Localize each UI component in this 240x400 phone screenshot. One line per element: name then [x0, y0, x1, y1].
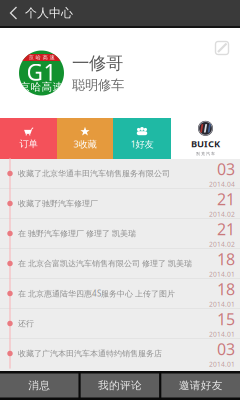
staticText: 个人中心	[25, 6, 73, 20]
button[interactable]: 消息	[0, 371, 79, 399]
staticText: 我的评论	[98, 379, 142, 392]
button[interactable]: 在 北京合富凯达汽车销售有限公司 修理了 凯美瑞	[0, 249, 240, 278]
staticText: 2014.01	[209, 270, 235, 279]
button[interactable]: 收藏了驰野汽车修理厂	[0, 189, 240, 218]
staticText: 2014.01	[209, 330, 235, 339]
button[interactable]: 3收藏	[57, 118, 113, 159]
staticText: 2014.01	[209, 300, 235, 309]
button[interactable]: 邀请好友	[161, 371, 240, 399]
button[interactable]: 1好友	[113, 118, 171, 159]
staticText: 21	[217, 218, 235, 240]
staticText: 收藏了驰野汽车修理厂	[18, 199, 98, 208]
staticText: 在 北京合富凯达汽车销售有限公司 修理了 凯美瑞	[18, 259, 192, 268]
button[interactable]: 在 驰野汽车修理厂 修理了 凯美瑞	[0, 219, 240, 248]
staticText: 3收藏	[73, 138, 96, 150]
button[interactable]: 我的评论	[81, 371, 159, 399]
button[interactable]: Back	[0, 3, 23, 22]
button[interactable]: 收藏了广汽本田汽车本通特约销售服务店	[0, 339, 240, 368]
staticText: 京哈高速	[19, 80, 63, 93]
staticText: 邀请好友	[179, 379, 223, 392]
staticText: 15	[217, 308, 235, 330]
button[interactable]: 订单	[0, 118, 57, 159]
button[interactable]: 收藏了北京华通丰田汽车销售服务有限公司	[0, 159, 240, 188]
staticText: 18	[217, 248, 235, 270]
staticText: 03	[217, 158, 235, 180]
staticText: 一修哥	[72, 53, 123, 74]
staticText: 在 驰野汽车修理厂 修理了 凯美瑞	[18, 229, 136, 238]
staticText: BUICK	[191, 137, 220, 150]
staticText: 收藏了北京华通丰田汽车销售服务有限公司	[18, 169, 170, 178]
staticText: 2014.01	[209, 360, 235, 369]
staticText: 1好友	[130, 138, 153, 150]
staticText: 18	[217, 278, 235, 300]
staticText: 订单	[19, 138, 37, 150]
staticText: 聪明修车	[72, 77, 124, 93]
button[interactable]: 还行	[0, 309, 240, 338]
button[interactable]: 在 北京惠通陆华四惠4S服务中心 上传了图片	[0, 279, 240, 308]
button[interactable]: Edit profile	[214, 28, 240, 56]
staticText: 京 哈 高 速	[28, 54, 54, 61]
staticText: 收藏了广汽本田汽车本通特约销售服务店	[18, 349, 162, 358]
staticText: 03	[217, 338, 235, 360]
staticText: 还行	[18, 319, 34, 328]
staticText: 在 北京惠通陆华四惠4S服务中心 上传了图片	[18, 288, 175, 299]
staticText: 消息	[28, 379, 50, 392]
staticText: 21	[217, 188, 235, 210]
staticText: 2014.02	[209, 210, 235, 219]
staticText: G1	[26, 57, 56, 87]
staticText: 别 克 汽 车	[196, 151, 215, 156]
staticText: 2014.04	[209, 180, 235, 189]
staticText: 2014.02	[209, 240, 235, 249]
